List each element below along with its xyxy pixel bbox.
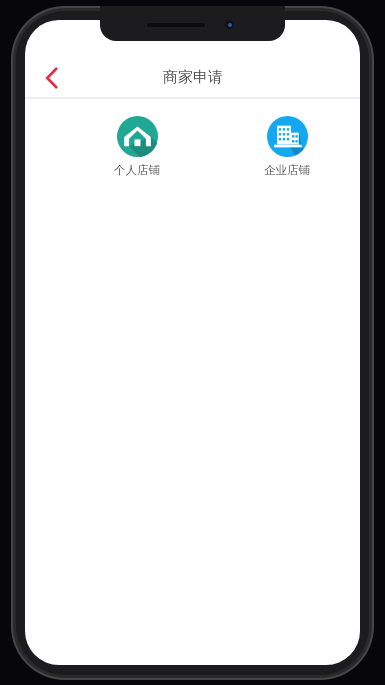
- button[interactable]: 个人店铺: [103, 116, 171, 177]
- staticText: 企业店铺: [264, 163, 310, 177]
- button[interactable]: 企业店铺: [253, 116, 321, 177]
- staticText: 商家申请: [163, 68, 223, 87]
- button[interactable]: 返回: [33, 59, 71, 97]
- staticText: 个人店铺: [114, 163, 160, 177]
